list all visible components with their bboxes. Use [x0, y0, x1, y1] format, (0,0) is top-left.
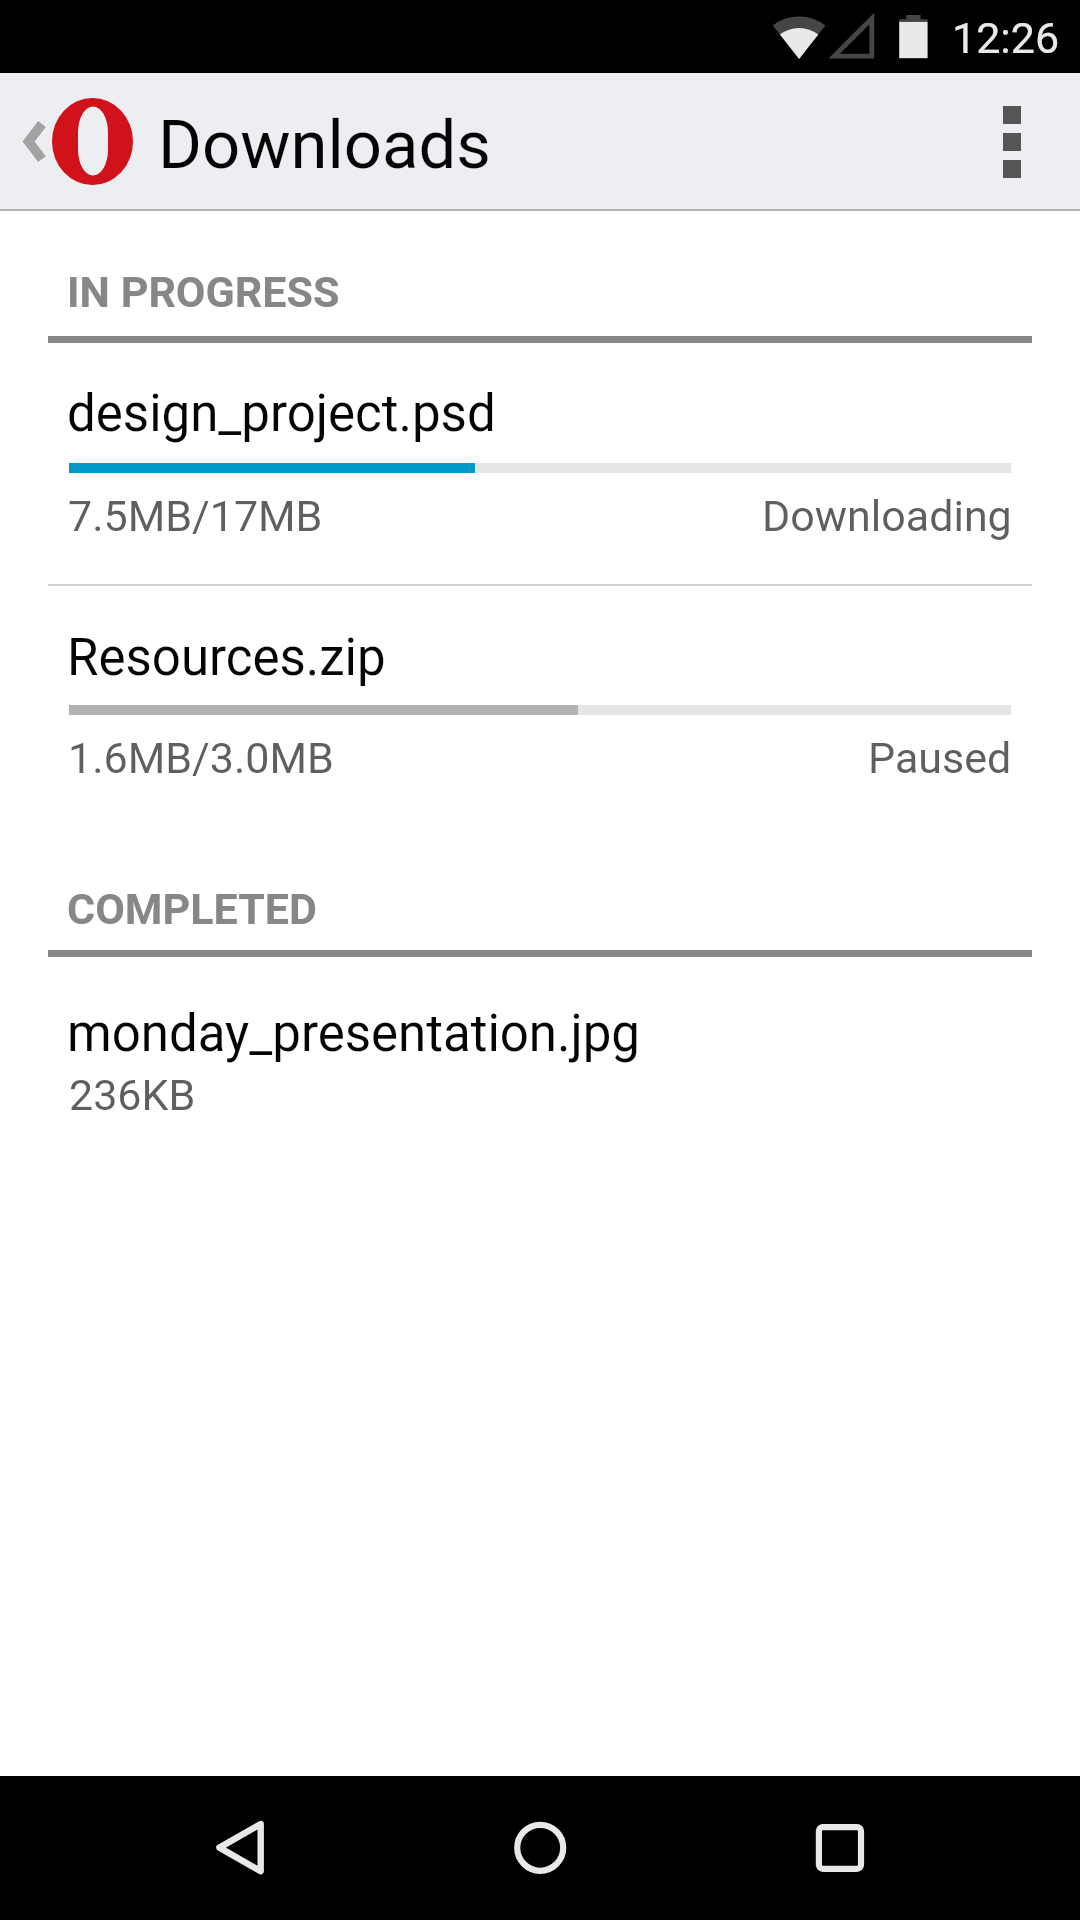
button[interactable]: Resources.zip, 1.6MB of 3.0MB, paused [0, 586, 1080, 828]
staticText: 12:26 [952, 13, 1060, 63]
button[interactable]: More options [952, 74, 1072, 210]
button[interactable]: monday_presentation.jpg, 236KB [0, 957, 1080, 1117]
button[interactable]: Recents [778, 1783, 908, 1913]
button[interactable]: Navigate up [0, 73, 150, 209]
button[interactable]: design_project.psd, 7.5MB of 17MB, downl… [0, 343, 1080, 584]
staticText: Paused [868, 733, 1012, 783]
staticText: IN PROGRESS [67, 267, 340, 317]
button[interactable]: Home [475, 1783, 605, 1913]
staticText: 7.5MB/17MB [68, 491, 323, 541]
button[interactable]: Back [173, 1783, 303, 1913]
staticText: Downloads [158, 106, 491, 185]
staticText: COMPLETED [67, 884, 317, 934]
staticText: monday_presentation.jpg [67, 1004, 640, 1064]
staticText: Downloading [762, 491, 1012, 541]
staticText: design_project.psd [67, 384, 496, 444]
staticText: 1.6MB/3.0MB [68, 733, 334, 783]
staticText: Resources.zip [67, 628, 386, 688]
staticText: 236KB [69, 1070, 196, 1120]
